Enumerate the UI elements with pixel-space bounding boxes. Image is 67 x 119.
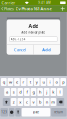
button[interactable]: Add (34, 45, 60, 55)
staticText: b (39, 99, 41, 105)
staticText: Carrier (1, 0, 15, 5)
button[interactable]: h (37, 88, 43, 96)
button[interactable]: f (24, 88, 30, 96)
button[interactable]: l (57, 88, 63, 96)
staticText: e (16, 79, 18, 85)
button[interactable]: q (1, 78, 7, 86)
staticText: 9:41 AM (38, 1, 50, 4)
button[interactable]: Next keyboard (9, 108, 14, 116)
staticText: g (32, 89, 34, 95)
button[interactable]: p (60, 78, 66, 86)
staticText: m (51, 99, 55, 105)
staticText: Cv Photo 161 Anne (15, 6, 51, 11)
button[interactable]: k (50, 88, 56, 96)
button[interactable]: j (44, 88, 50, 96)
staticText: n (46, 99, 48, 105)
staticText: r (23, 79, 25, 85)
staticText: ABC-1234 (11, 37, 26, 41)
button[interactable]: s (11, 88, 17, 96)
button[interactable]: o (54, 78, 59, 86)
button[interactable]: Cancel (7, 45, 33, 55)
staticText: k (52, 89, 54, 95)
staticText: Add (42, 47, 51, 52)
button[interactable]: space (22, 108, 50, 116)
staticText: Cancel (14, 47, 26, 52)
button[interactable]: r (21, 78, 26, 86)
button[interactable]: n (44, 98, 50, 106)
button[interactable]: b (37, 98, 43, 106)
staticText: z (13, 99, 15, 105)
staticText: q (3, 79, 5, 85)
staticText: s (13, 89, 15, 95)
staticText: p (62, 79, 64, 85)
staticText: l (59, 89, 60, 95)
button[interactable]: Delete (57, 98, 64, 106)
button[interactable]: return (51, 108, 67, 116)
staticText: x (19, 99, 21, 105)
staticText: t (30, 79, 31, 85)
button[interactable]: y (34, 78, 40, 86)
button[interactable]: z (11, 98, 17, 106)
staticText: Add new car plate (21, 31, 45, 34)
staticText: return (54, 110, 63, 114)
button[interactable]: 123 (0, 108, 8, 116)
staticText: Plates (4, 6, 14, 11)
button[interactable]: d (17, 88, 23, 96)
staticText: u (42, 79, 44, 85)
button[interactable]: Plates (1, 5, 15, 12)
staticText: j (46, 89, 47, 95)
staticText: d (19, 89, 21, 95)
button[interactable]: a (4, 88, 10, 96)
staticText: o (56, 79, 58, 85)
staticText: f (26, 89, 27, 95)
button[interactable]: m (50, 98, 56, 106)
staticText: h (39, 89, 41, 95)
button[interactable]: Dictation (15, 108, 21, 116)
staticText: c (26, 99, 28, 105)
button[interactable]: e (14, 78, 20, 86)
staticText: Add (28, 22, 38, 30)
button[interactable]: v (31, 98, 36, 106)
button[interactable]: u (40, 78, 46, 86)
button[interactable]: Add (59, 5, 66, 12)
staticText: space (32, 110, 39, 114)
staticText: v (32, 99, 34, 105)
button[interactable]: i (47, 78, 53, 86)
staticText: 123 (1, 110, 7, 114)
button[interactable]: Shift (3, 98, 10, 106)
button[interactable]: w (7, 78, 13, 86)
button[interactable]: c (24, 98, 30, 106)
button[interactable]: x (17, 98, 23, 106)
staticText: y (36, 79, 38, 85)
button[interactable]: g (31, 88, 36, 96)
button[interactable]: t (27, 78, 33, 86)
staticText: w (9, 79, 12, 85)
staticText: a (6, 89, 8, 95)
